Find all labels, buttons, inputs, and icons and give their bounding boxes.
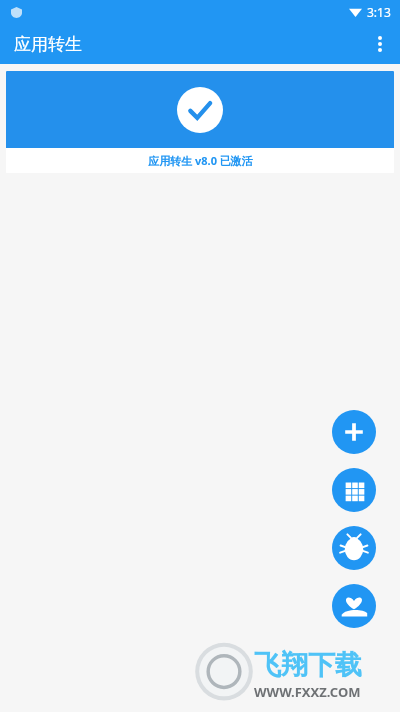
staticText: 飞翔下载	[254, 648, 362, 682]
staticText: 应用转生 v8.0 已激活	[148, 153, 253, 168]
staticText: 3:13	[367, 4, 391, 20]
button[interactable]: Donate	[332, 584, 376, 628]
button[interactable]: Apps	[332, 468, 376, 512]
button[interactable]: 应用转生 v8.0 已激活	[6, 71, 394, 173]
button[interactable]: More options	[360, 24, 400, 64]
staticText: 应用转生	[14, 34, 82, 55]
button[interactable]: Add	[332, 410, 376, 454]
staticText: WWW.FXXZ.COM	[254, 683, 361, 701]
button[interactable]: Debug	[332, 526, 376, 570]
